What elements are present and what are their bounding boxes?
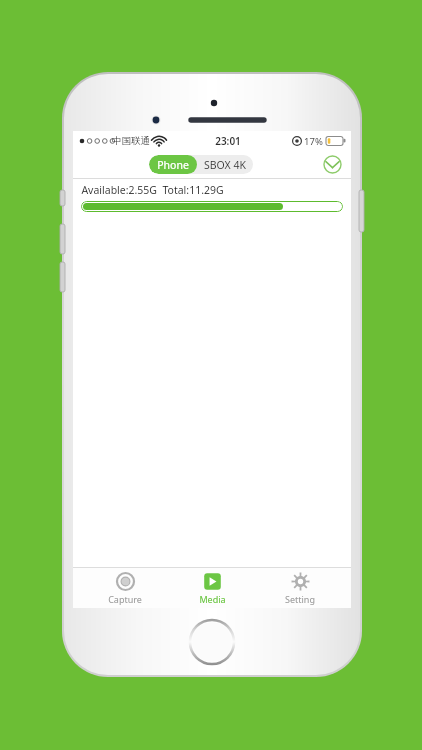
staticText: Phone [157,158,189,172]
button[interactable]: Phone [149,155,197,174]
button[interactable]: Media [176,568,248,608]
staticText: 17% [304,135,323,148]
staticText: 中国联通 [112,135,150,147]
button[interactable]: Expand [323,155,342,174]
staticText: Setting [285,593,315,605]
staticText: Media [199,593,226,605]
staticText: Available:2.55G Total:11.29G [81,183,224,197]
staticText: Capture [108,593,142,605]
button[interactable]: Capture [89,568,161,608]
staticText: 23:01 [215,134,241,148]
button[interactable]: Setting [264,568,336,608]
staticText: SBOX 4K [204,158,246,172]
button[interactable]: SBOX 4K [197,155,253,174]
